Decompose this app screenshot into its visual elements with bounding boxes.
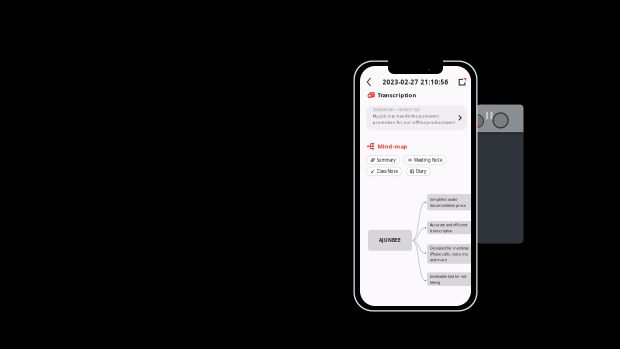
staticText: transcription [430, 228, 452, 233]
button[interactable]: Summary [366, 156, 399, 164]
staticText: iPhone calls, voice me [430, 251, 468, 257]
staticText: documentation proce [430, 203, 466, 208]
staticText: Summary [376, 157, 395, 163]
staticText: taking [430, 279, 440, 285]
button[interactable]: Back [360, 75, 377, 89]
staticText: AJUNBEE [379, 237, 401, 243]
staticText: promotion for our offline product event [372, 119, 454, 125]
staticText: My job is to handle the post event [372, 113, 438, 119]
staticText: Invaluable tool for not [430, 273, 466, 279]
button[interactable]: Share [454, 75, 471, 89]
button[interactable]: Diary [406, 167, 430, 176]
staticText: Class Note [376, 168, 397, 174]
staticText: and more [430, 257, 447, 262]
staticText: Simplifies audio [430, 197, 457, 202]
button[interactable]: Class Note [366, 167, 401, 176]
button[interactable]: 00:00:00.000 -> 00:00:07.320 [366, 105, 467, 130]
staticText: Diary [416, 168, 426, 174]
staticText: 2023-02-27 21:10:56 [382, 78, 448, 86]
staticText: Accurate and efficient [430, 222, 467, 227]
staticText: Meeting Note [414, 157, 442, 163]
staticText: 00:00:00.000 -> 00:00:07.320 [372, 107, 419, 112]
staticText: Transcription [377, 91, 416, 99]
button[interactable]: Meeting Note [404, 156, 446, 164]
staticText: Designed for meetings [430, 245, 469, 251]
staticText: Mind-map [377, 142, 407, 150]
